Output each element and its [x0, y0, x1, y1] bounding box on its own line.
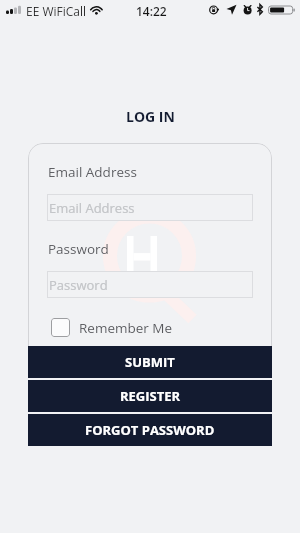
staticText: FORGOT PASSWORD [85, 421, 215, 439]
staticText: EE WiFiCall [26, 3, 87, 19]
other: Battery [268, 5, 296, 15]
staticText: Password [49, 276, 108, 294]
staticText: Remember Me [79, 319, 173, 337]
other: Alarm [242, 4, 254, 16]
button[interactable]: SUBMIT [28, 346, 272, 378]
staticText: Email Address [48, 163, 137, 181]
staticText: REGISTER [120, 387, 181, 405]
staticText: Email Address [49, 199, 135, 217]
staticText: 14:22 [136, 3, 167, 19]
other: Rotation lock [209, 4, 221, 16]
button[interactable]: Remember Me [48, 316, 173, 339]
button[interactable]: FORGOT PASSWORD [28, 414, 272, 446]
button[interactable]: REGISTER [28, 380, 272, 412]
staticText: Password [48, 240, 109, 258]
staticText: LOG IN [126, 107, 175, 126]
other: Bluetooth [257, 4, 265, 15]
other: Location [226, 4, 238, 16]
staticText: SUBMIT [125, 353, 175, 371]
